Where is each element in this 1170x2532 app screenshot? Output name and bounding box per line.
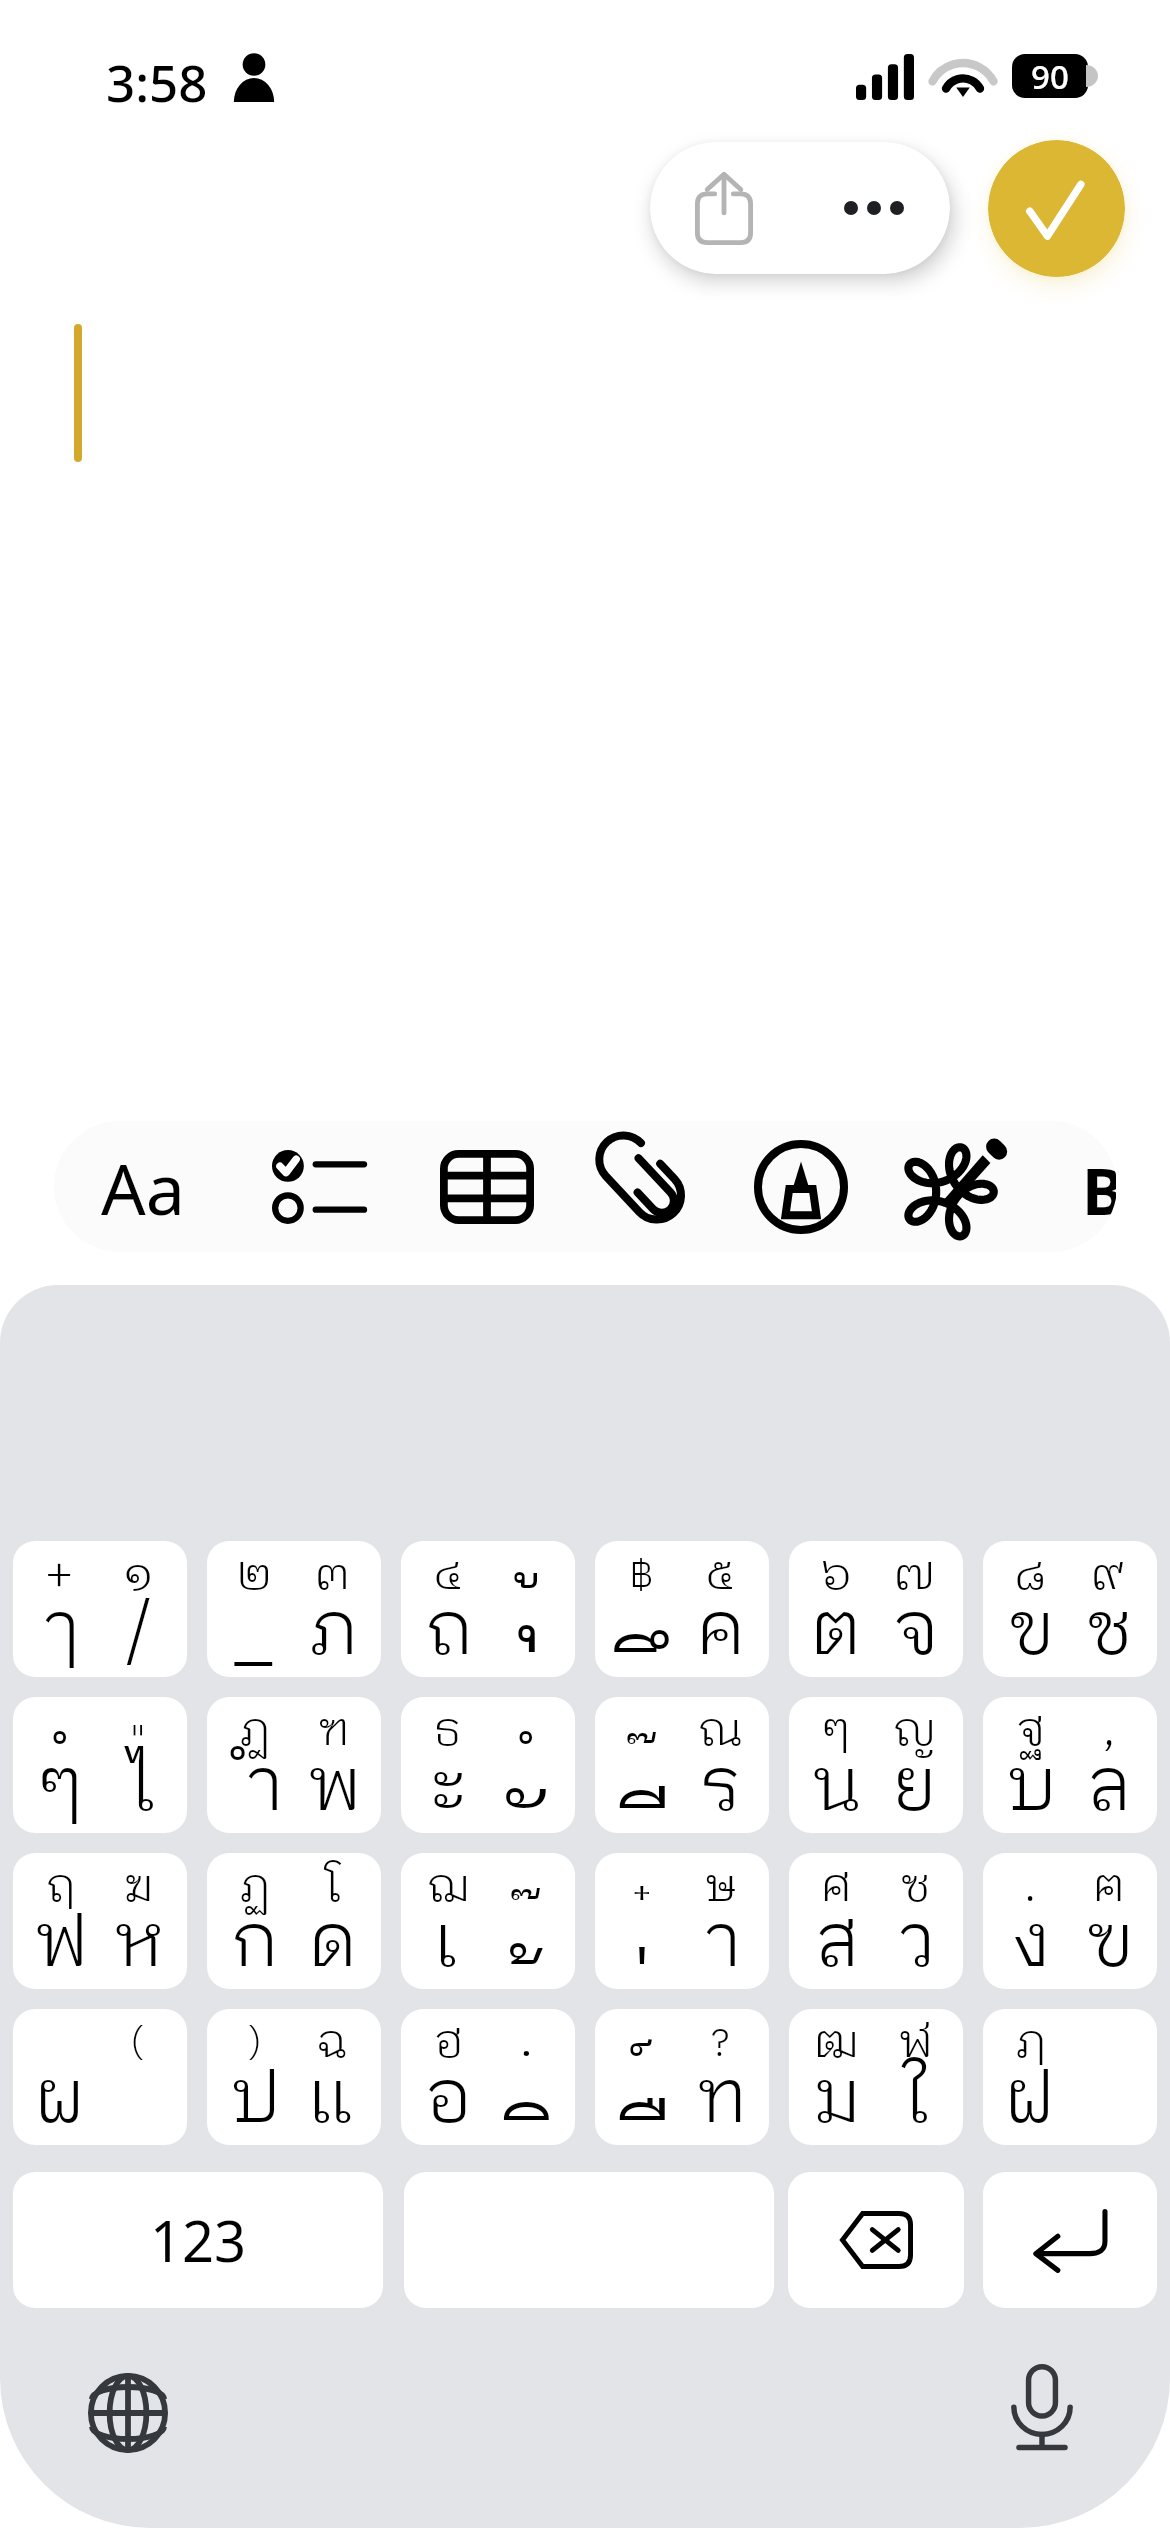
button[interactable] bbox=[983, 1541, 1157, 1677]
button[interactable] bbox=[595, 1853, 769, 1989]
button[interactable]: Backspace bbox=[788, 2172, 964, 2308]
staticText: B bbox=[1082, 1147, 1116, 1229]
staticText: 123 bbox=[150, 2202, 247, 2278]
button[interactable] bbox=[401, 1853, 575, 1989]
button[interactable] bbox=[595, 1697, 769, 1833]
button[interactable]: More options bbox=[826, 160, 922, 256]
button[interactable] bbox=[595, 1541, 769, 1677]
button[interactable] bbox=[401, 2009, 575, 2145]
staticText: 3:58 bbox=[106, 47, 208, 116]
button[interactable]: Attach file bbox=[579, 1137, 719, 1237]
button[interactable]: Aa bbox=[73, 1137, 213, 1237]
button[interactable] bbox=[983, 2009, 1157, 2145]
button[interactable] bbox=[789, 1541, 963, 1677]
button[interactable]: AI assist bbox=[882, 1134, 1022, 1240]
button[interactable] bbox=[789, 2009, 963, 2145]
button[interactable] bbox=[13, 2009, 187, 2145]
button[interactable]: Share bbox=[674, 160, 774, 256]
button[interactable] bbox=[207, 2009, 381, 2145]
button[interactable] bbox=[207, 1541, 381, 1677]
button[interactable] bbox=[13, 1697, 187, 1833]
button[interactable]: Draw bbox=[731, 1137, 871, 1237]
button[interactable] bbox=[595, 2009, 769, 2145]
button[interactable]: Change keyboard language bbox=[78, 2363, 178, 2463]
staticText: Aa bbox=[101, 1140, 185, 1235]
button[interactable]: Voice input bbox=[998, 2364, 1086, 2452]
button[interactable]: Done bbox=[988, 140, 1125, 277]
staticText: 90 bbox=[1031, 54, 1069, 98]
button[interactable] bbox=[401, 1697, 575, 1833]
button[interactable] bbox=[13, 1541, 187, 1677]
button[interactable] bbox=[789, 1853, 963, 1989]
button[interactable] bbox=[13, 1853, 187, 1989]
button[interactable] bbox=[207, 1697, 381, 1833]
button[interactable] bbox=[207, 1853, 381, 1989]
button[interactable]: 123 bbox=[13, 2172, 383, 2308]
button[interactable] bbox=[789, 1697, 963, 1833]
button[interactable]: Return bbox=[983, 2172, 1157, 2308]
button[interactable]: Table bbox=[417, 1137, 557, 1237]
button[interactable] bbox=[401, 1541, 575, 1677]
button[interactable] bbox=[983, 1853, 1157, 1989]
button[interactable]: Checklist bbox=[248, 1137, 388, 1237]
button[interactable] bbox=[983, 1697, 1157, 1833]
